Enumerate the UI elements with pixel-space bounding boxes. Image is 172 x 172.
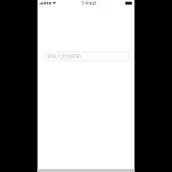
button[interactable]: 请输入您的邮箱 bbox=[43, 52, 128, 61]
staticText: 下午9:37 bbox=[81, 0, 96, 6]
staticText: 请输入您的邮箱 bbox=[46, 53, 81, 60]
